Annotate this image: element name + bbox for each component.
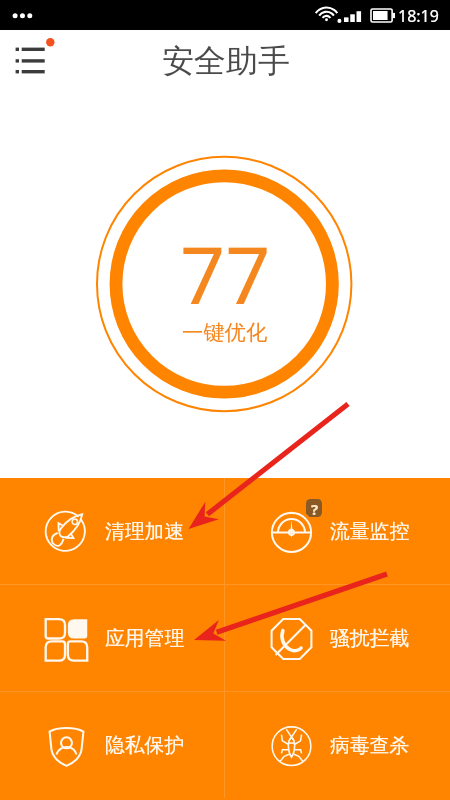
- staticText: 一键优化: [182, 319, 268, 346]
- button[interactable]: 病毒查杀: [225, 692, 450, 798]
- staticText: 清理加速: [105, 519, 185, 544]
- button[interactable]: 清理加速: [0, 478, 224, 584]
- button[interactable]: 隐私保护: [0, 692, 224, 798]
- staticText: 骚扰拦截: [330, 626, 410, 651]
- button[interactable]: 应用管理: [0, 585, 224, 691]
- staticText: 应用管理: [105, 626, 185, 651]
- staticText: 流量监控: [330, 519, 410, 544]
- button[interactable]: ?: [225, 478, 450, 584]
- staticText: 18:19: [398, 5, 439, 27]
- staticText: 安全助手: [162, 41, 290, 81]
- button[interactable]: Menu: [8, 36, 62, 96]
- button[interactable]: 骚扰拦截: [225, 585, 450, 691]
- staticText: 隐私保护: [105, 733, 185, 758]
- staticText: 病毒查杀: [330, 733, 410, 758]
- staticText: ?: [311, 499, 319, 517]
- staticText: 77: [180, 220, 271, 328]
